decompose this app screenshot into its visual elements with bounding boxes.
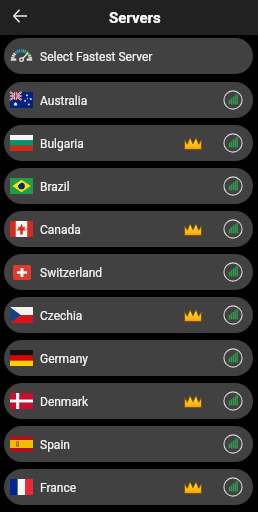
staticText: Select Fastest Server bbox=[40, 50, 153, 64]
staticText: Switzerland bbox=[40, 266, 103, 280]
button[interactable]: Australia bbox=[4, 82, 253, 118]
staticText: Spain bbox=[40, 438, 70, 452]
button[interactable]: Germany bbox=[4, 340, 253, 376]
staticText: Germany bbox=[40, 352, 88, 366]
button[interactable]: Back bbox=[8, 4, 32, 28]
staticText: Denmark bbox=[40, 395, 89, 409]
button[interactable]: Bulgaria bbox=[4, 125, 253, 161]
staticText: Brazil bbox=[40, 180, 70, 194]
staticText: Australia bbox=[40, 94, 88, 108]
staticText: Servers bbox=[109, 9, 161, 27]
staticText: Czechia bbox=[40, 309, 83, 323]
button[interactable]: Spain bbox=[4, 426, 253, 462]
staticText: Canada bbox=[40, 223, 81, 237]
staticText: France bbox=[40, 481, 77, 495]
button[interactable]: Denmark bbox=[4, 383, 253, 419]
button[interactable]: Czechia bbox=[4, 297, 253, 333]
button[interactable]: Select Fastest Server bbox=[4, 38, 253, 74]
button[interactable]: Brazil bbox=[4, 168, 253, 204]
button[interactable]: Canada bbox=[4, 211, 253, 247]
button[interactable]: Switzerland bbox=[4, 254, 253, 290]
button[interactable]: France bbox=[4, 469, 253, 505]
staticText: Bulgaria bbox=[40, 137, 84, 151]
